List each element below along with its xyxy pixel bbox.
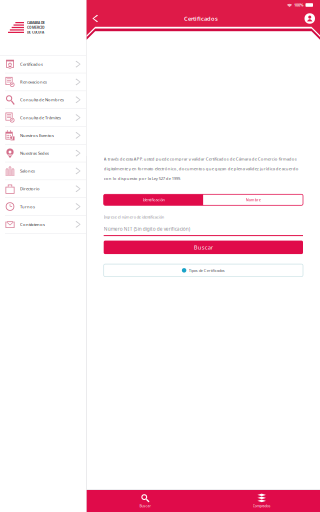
- staticText: Consulta de Nombres: [20, 97, 64, 102]
- button[interactable]: Renovaciones: [0, 73, 86, 91]
- staticText: CÁMARA DE: [27, 21, 45, 25]
- button[interactable]: Turnos: [0, 198, 86, 216]
- staticText: Número NIT (Sin dígito de verificación): [104, 226, 190, 232]
- staticText: Nombre: [246, 197, 261, 202]
- button[interactable]: Contáctenos: [0, 216, 86, 233]
- staticText: Directorio: [20, 186, 40, 191]
- button[interactable]: Certificados: [0, 55, 86, 73]
- staticText: A través de esta APP, usted puede compra…: [104, 156, 299, 181]
- staticText: Certificados: [184, 15, 218, 22]
- button[interactable]: Nuestras Sedes: [0, 144, 86, 162]
- button[interactable]: Buscar: [87, 490, 203, 512]
- staticText: Nuestras Sedes: [20, 150, 49, 156]
- button[interactable]: Identificación: [104, 194, 203, 205]
- staticText: Consulta de Trámites: [20, 115, 61, 120]
- button[interactable]: Comprados: [203, 490, 320, 512]
- button[interactable]: Buscar: [104, 241, 303, 254]
- button[interactable]: Directorio: [0, 180, 86, 198]
- staticText: Nuestros Eventos: [20, 132, 54, 138]
- staticText: Salones: [20, 168, 35, 174]
- button[interactable]: Tipos de Certificados: [104, 264, 303, 277]
- button[interactable]: Nombre: [203, 194, 303, 205]
- staticText: Turnos: [20, 204, 35, 209]
- button[interactable]: Consulta de Trámites: [0, 109, 86, 127]
- staticText: Tipos de Certificados: [189, 268, 225, 273]
- staticText: Identificación: [142, 197, 164, 202]
- staticText: DE CÚCUTA: [27, 30, 44, 34]
- button[interactable]: Nuestros Eventos: [0, 127, 86, 144]
- staticText: Comprados: [253, 504, 271, 508]
- staticText: Certificados: [20, 61, 43, 67]
- button[interactable]: Back: [89, 10, 101, 26]
- staticText: Buscar: [194, 243, 213, 251]
- staticText: Contáctenos: [20, 221, 45, 227]
- button[interactable]: Profile: [301, 13, 318, 24]
- button[interactable]: Salones: [0, 162, 86, 180]
- staticText: Buscar: [139, 504, 150, 508]
- staticText: 100%: [294, 2, 304, 8]
- staticText: Renovaciones: [20, 79, 47, 85]
- staticText: Ingrese el número de identificación: [104, 214, 164, 220]
- staticText: COMERCIO: [27, 25, 45, 30]
- button[interactable]: Consulta de Nombres: [0, 91, 86, 109]
